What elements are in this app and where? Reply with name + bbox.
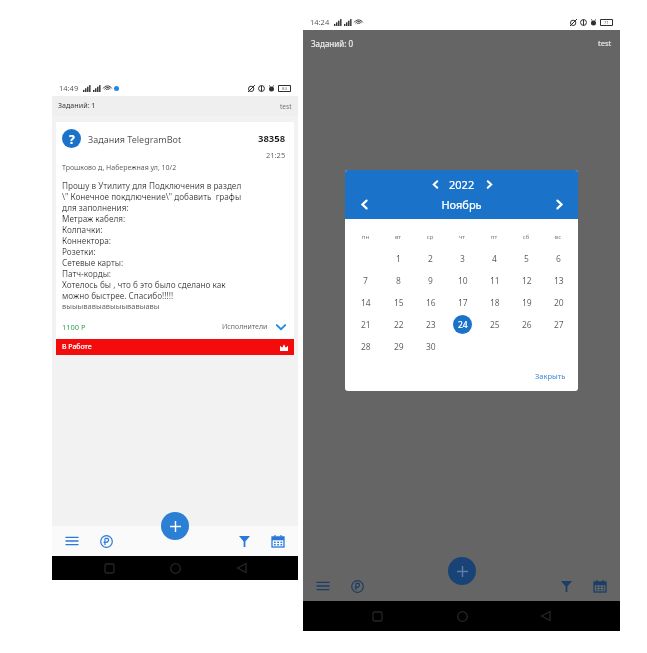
button[interactable]: 29: [389, 337, 408, 356]
button[interactable]: Календарь: [268, 531, 288, 551]
staticText: Патч-корды:: [62, 268, 112, 279]
staticText: 27: [554, 319, 564, 331]
staticText: 4: [492, 253, 497, 265]
staticText: чт: [446, 233, 478, 241]
staticText: 23: [426, 319, 436, 331]
button[interactable]: Деньги: [347, 576, 367, 596]
button[interactable]: Следующий год: [481, 176, 497, 192]
staticText: ср: [414, 233, 446, 241]
button[interactable]: Меню: [62, 531, 82, 551]
button[interactable]: 25: [485, 315, 504, 334]
staticText: Заданий: 0: [311, 38, 354, 49]
staticText: ?: [69, 131, 75, 147]
staticText: 9: [428, 275, 433, 287]
staticText: вс: [542, 233, 574, 241]
staticText: Хотелось бы , что б это было сделано как: [62, 279, 226, 290]
button[interactable]: Добавить: [161, 512, 189, 540]
staticText: 26: [522, 319, 532, 331]
button[interactable]: 15: [389, 293, 408, 312]
button[interactable]: Деньги: [96, 531, 116, 551]
button[interactable]: 14: [356, 293, 375, 312]
button[interactable]: Фильтр: [234, 531, 254, 551]
staticText: 22: [394, 319, 404, 331]
button[interactable]: 1: [389, 249, 408, 268]
button[interactable]: 22: [389, 315, 408, 334]
staticText: 7: [363, 275, 368, 287]
button[interactable]: 16: [421, 293, 440, 312]
button[interactable]: Фильтр: [556, 576, 576, 596]
button[interactable]: 10: [453, 271, 472, 290]
staticText: сб: [510, 233, 542, 241]
staticText: 17: [458, 297, 468, 309]
staticText: Колпачки:: [62, 224, 103, 235]
button[interactable]: Обзор: [99, 558, 119, 578]
button[interactable]: 20: [549, 293, 568, 312]
button[interactable]: Развернуть: [274, 320, 288, 334]
button[interactable]: Добавить: [448, 557, 476, 585]
staticText: 1100 Р: [62, 322, 86, 332]
staticText: 24: [458, 319, 468, 331]
button[interactable]: 8: [389, 271, 408, 290]
staticText: 13: [554, 275, 564, 287]
button[interactable]: 3: [453, 249, 472, 268]
staticText: 28: [361, 341, 371, 353]
button[interactable]: 28: [356, 337, 375, 356]
button[interactable]: Обзор: [367, 606, 387, 626]
button[interactable]: Закрыть: [523, 367, 578, 385]
staticText: 25: [490, 319, 500, 331]
staticText: Заданий: 1: [58, 101, 96, 111]
staticText: 5: [524, 253, 529, 265]
button[interactable]: Меню: [313, 576, 333, 596]
staticText: 38358: [258, 132, 286, 145]
staticText: 16: [426, 297, 436, 309]
button[interactable]: Предыдущий месяц: [355, 195, 373, 213]
staticText: 14:49: [59, 83, 79, 93]
button[interactable]: 13: [549, 271, 568, 290]
button[interactable]: 7: [356, 271, 375, 290]
staticText: В Работе: [62, 342, 92, 352]
staticText: 8: [396, 275, 401, 287]
button[interactable]: Назад: [232, 558, 252, 578]
staticText: Задания TelegramBot: [88, 133, 182, 145]
staticText: Исполнители: [222, 322, 268, 332]
button[interactable]: Календарь: [590, 576, 610, 596]
staticText: пт: [478, 233, 510, 241]
staticText: 29: [394, 341, 404, 353]
staticText: 14: [361, 297, 371, 309]
staticText: 71: [604, 20, 609, 25]
button[interactable]: 30: [421, 337, 440, 356]
button[interactable]: 12: [517, 271, 536, 290]
staticText: Сетевые карты:: [62, 257, 124, 268]
button[interactable]: Предыдущий год: [427, 176, 443, 192]
staticText: 84: [282, 86, 287, 91]
button[interactable]: 27: [549, 315, 568, 334]
button[interactable]: 11: [485, 271, 504, 290]
button[interactable]: ?: [56, 122, 294, 355]
button[interactable]: 17: [453, 293, 472, 312]
button[interactable]: Назад: [536, 606, 556, 626]
staticText: Закрыть: [535, 371, 566, 381]
button[interactable]: Домой: [165, 558, 185, 578]
button[interactable]: 4: [485, 249, 504, 268]
staticText: 2022: [449, 177, 475, 192]
button[interactable]: 2: [421, 249, 440, 268]
button[interactable]: В Работе: [56, 339, 294, 355]
button[interactable]: 21: [356, 315, 375, 334]
staticText: \" Конечное покдлючение\" добавить графы: [62, 191, 242, 202]
staticText: 21:25: [266, 150, 286, 160]
staticText: Метраж кабеля:: [62, 213, 126, 224]
button[interactable]: 24: [453, 315, 472, 334]
button[interactable]: 5: [517, 249, 536, 268]
staticText: 11: [490, 275, 500, 287]
button[interactable]: 6: [549, 249, 568, 268]
button[interactable]: 18: [485, 293, 504, 312]
button[interactable]: Следующий месяц: [550, 195, 568, 213]
button[interactable]: Домой: [452, 606, 472, 626]
button[interactable]: 9: [421, 271, 440, 290]
staticText: Ноябрь: [373, 197, 550, 212]
button[interactable]: 26: [517, 315, 536, 334]
staticText: 6: [556, 253, 561, 265]
button[interactable]: 19: [517, 293, 536, 312]
staticText: 20: [554, 297, 564, 309]
button[interactable]: 23: [421, 315, 440, 334]
